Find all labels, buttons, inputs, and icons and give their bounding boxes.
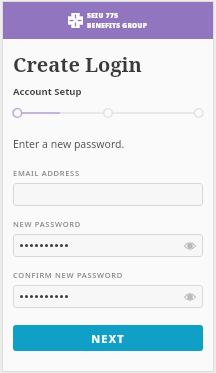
button[interactable] (13, 183, 203, 206)
button[interactable]: Show password (13, 285, 203, 308)
button[interactable]: Show password (183, 239, 197, 253)
staticText: NEXT (91, 331, 125, 346)
staticText: NEW PASSWORD (13, 219, 81, 229)
staticText: Account Setup (13, 85, 82, 98)
staticText: Enter a new password. (13, 137, 125, 151)
button[interactable]: Show password (183, 290, 197, 304)
staticText: EMAIL ADDRESS (13, 168, 80, 178)
button[interactable]: Show password (13, 234, 203, 257)
staticText: SEIU 775 (87, 11, 119, 20)
staticText: Create Login (13, 51, 142, 78)
staticText: CONFIRM NEW PASSWORD (13, 270, 123, 280)
staticText: BENEFITS GROUP (87, 21, 148, 30)
button[interactable]: NEXT (13, 325, 203, 351)
